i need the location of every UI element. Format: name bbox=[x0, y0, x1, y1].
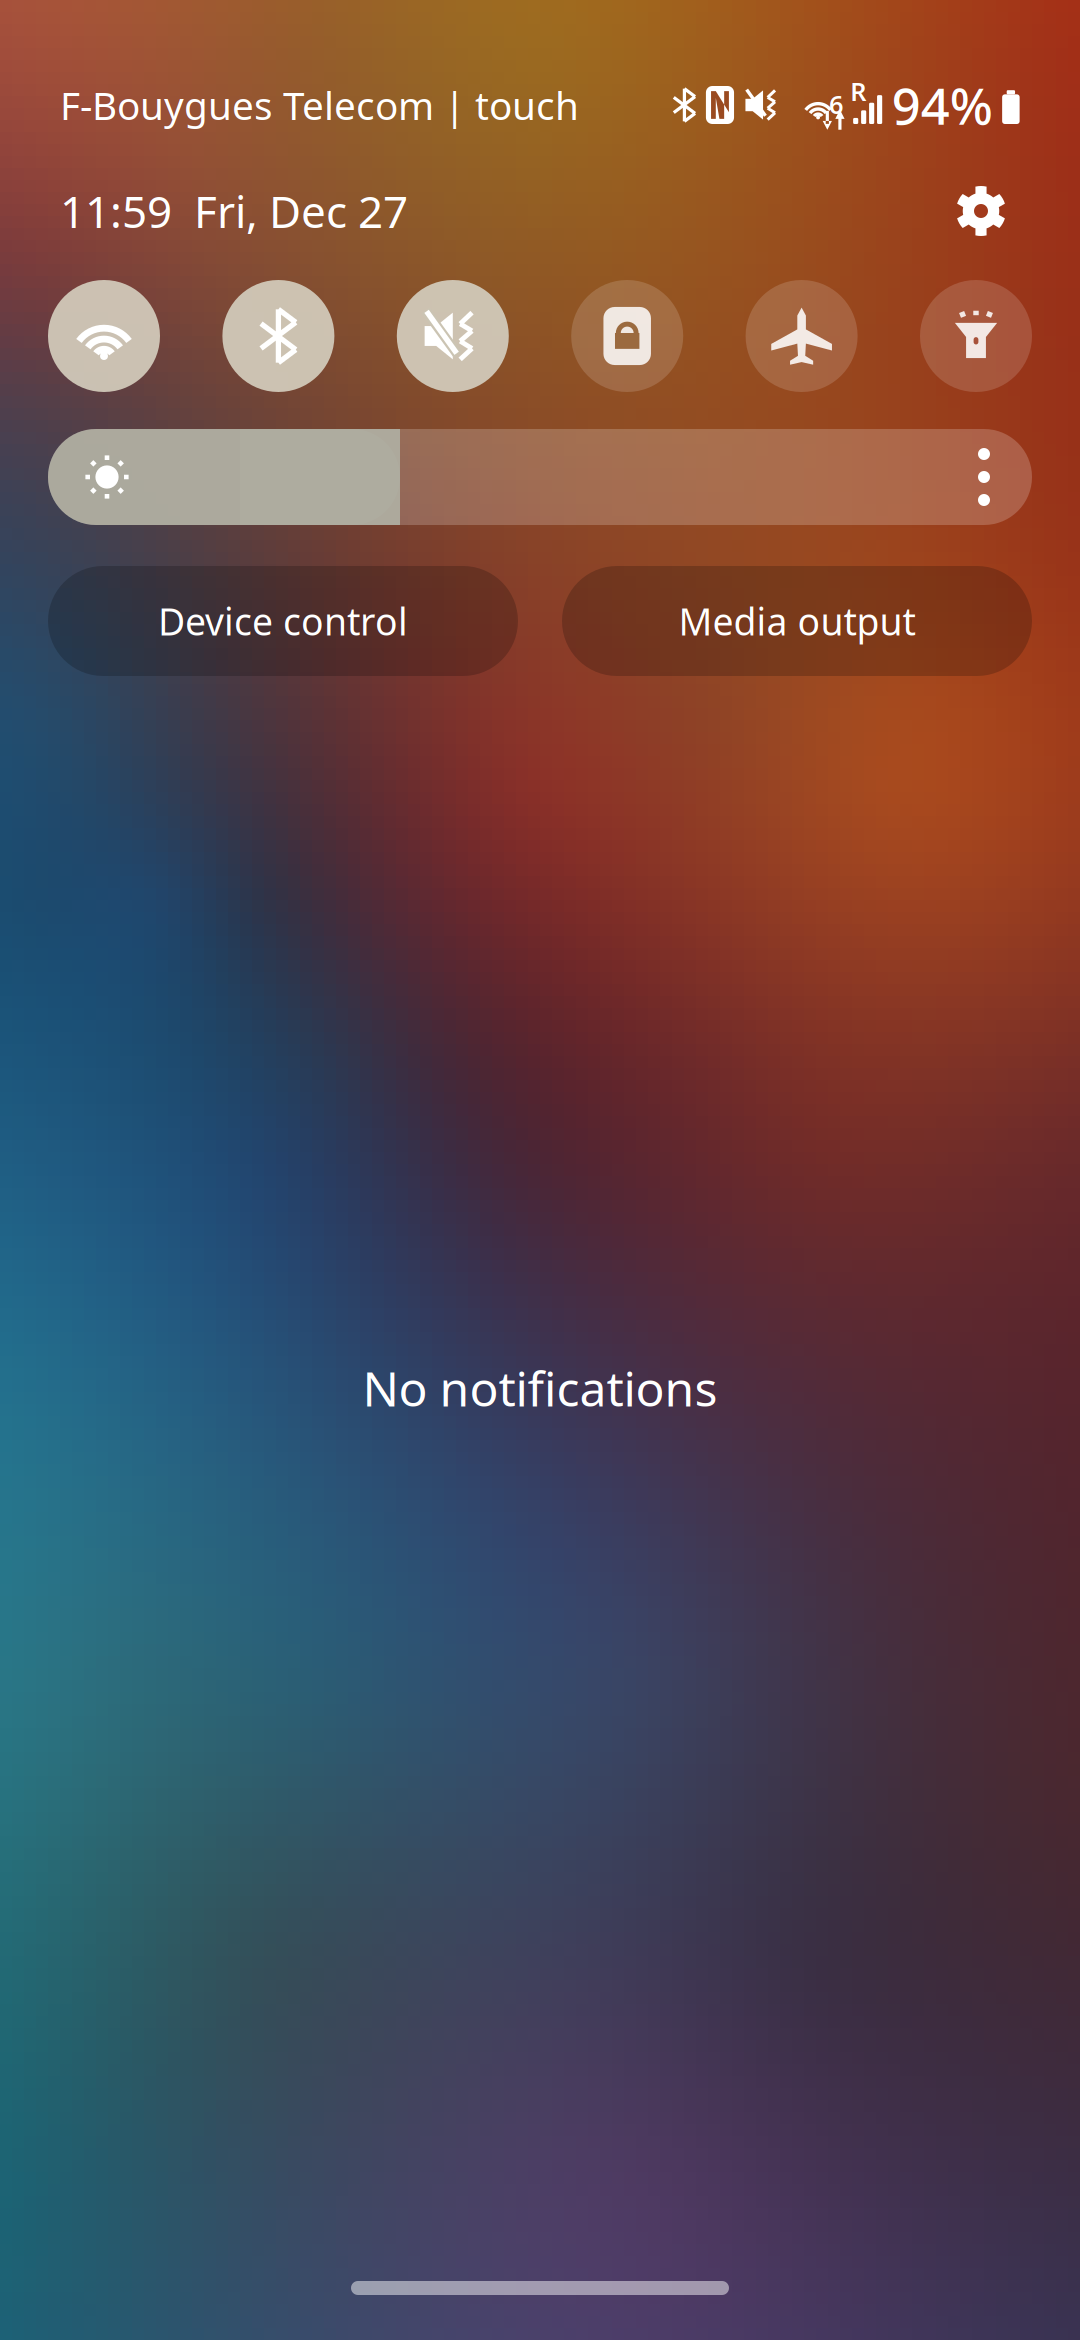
button[interactable]: Media output bbox=[562, 566, 1032, 676]
staticText: Device control bbox=[158, 596, 408, 646]
button[interactable]: Device control bbox=[48, 566, 518, 676]
button[interactable]: Airplane mode bbox=[746, 280, 858, 392]
staticText: R bbox=[850, 74, 866, 108]
button[interactable]: Wi-Fi bbox=[48, 280, 160, 392]
staticText: Media output bbox=[678, 596, 915, 646]
staticText: 94% bbox=[892, 71, 993, 139]
button[interactable]: Sound mode bbox=[397, 280, 509, 392]
staticText: No notifications bbox=[362, 1356, 717, 1420]
staticText: F-Bouygues Telecom | touch bbox=[60, 79, 579, 131]
button[interactable]: Settings bbox=[942, 172, 1020, 250]
button[interactable]: Auto rotate bbox=[571, 280, 683, 392]
button[interactable]: Flashlight bbox=[920, 280, 1032, 392]
button[interactable]: Brightness bbox=[0, 429, 1080, 525]
staticText: 11:59 Fri, Dec 27 bbox=[60, 182, 408, 240]
staticText: 6 bbox=[829, 87, 843, 121]
button[interactable]: Bluetooth bbox=[222, 280, 334, 392]
